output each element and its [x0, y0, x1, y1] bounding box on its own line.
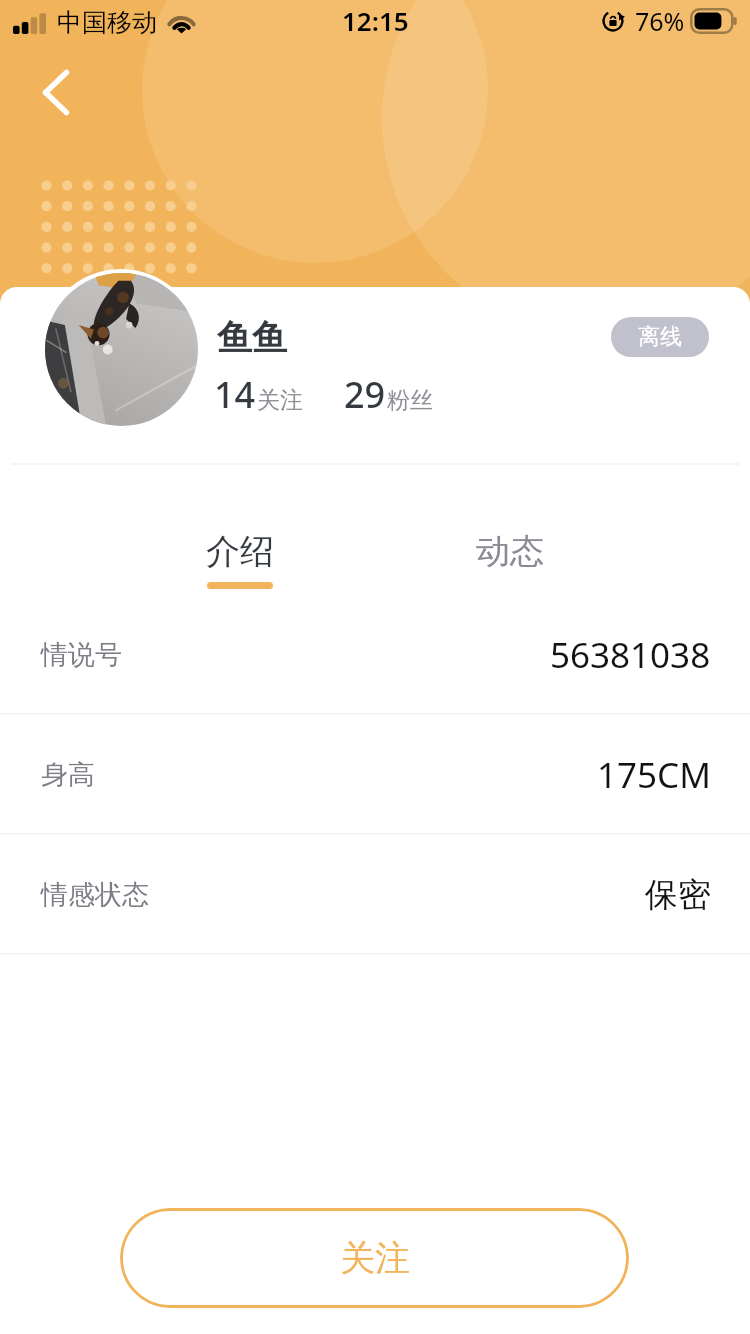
button[interactable]: 情感状态 — [0, 835, 750, 955]
staticText: 中国移动 — [57, 7, 157, 38]
button[interactable]: Avatar — [41, 269, 201, 429]
button[interactable]: 动态 — [435, 530, 585, 586]
button[interactable]: Back — [17, 56, 89, 128]
staticText: 56381038 — [550, 631, 711, 679]
staticText: 鱼鱼 — [217, 316, 287, 360]
staticText: 14 — [214, 370, 256, 419]
button[interactable]: 关注 — [120, 1208, 629, 1308]
staticText: 关注 — [340, 1236, 410, 1280]
staticText: 保密 — [645, 874, 711, 916]
button[interactable]: 离线 — [611, 317, 709, 357]
staticText: 动态 — [476, 530, 544, 573]
staticText: 29 — [344, 370, 386, 419]
button[interactable]: 身高 — [0, 715, 750, 835]
staticText: 身高 — [41, 758, 95, 792]
staticText: 76% — [635, 4, 685, 38]
staticText: 情感状态 — [41, 878, 149, 912]
staticText: 离线 — [638, 323, 682, 351]
staticText: 介绍 — [206, 530, 274, 573]
button[interactable]: 介绍 — [165, 530, 315, 608]
staticText: 粉丝 — [387, 386, 433, 415]
staticText: 12:15 — [342, 3, 409, 38]
staticText: 情说号 — [41, 638, 122, 672]
staticText: 关注 — [257, 386, 303, 415]
staticText: 175CM — [597, 751, 711, 799]
button[interactable]: 情说号 — [0, 595, 750, 715]
